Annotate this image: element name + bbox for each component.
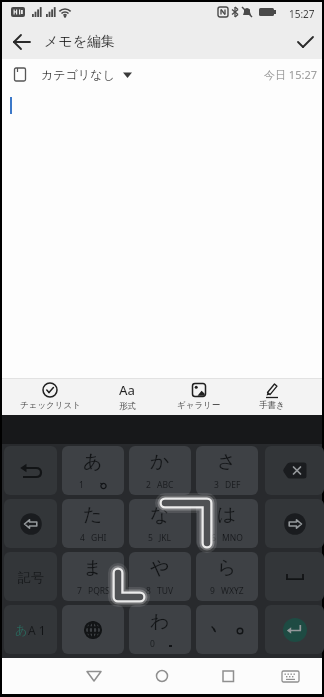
button[interactable]: さ [196, 446, 258, 495]
staticText: メモを編集 [44, 33, 115, 51]
button[interactable] [148, 662, 176, 690]
button[interactable] [276, 662, 304, 690]
staticText: 5 [148, 532, 153, 544]
button[interactable] [80, 662, 108, 690]
button[interactable] [4, 446, 57, 495]
staticText: 6 [211, 532, 216, 544]
button[interactable]: か [129, 446, 191, 495]
button[interactable] [265, 499, 324, 548]
staticText: あ [15, 622, 28, 637]
button[interactable]: は [196, 499, 258, 548]
staticText: A 1 [28, 622, 46, 638]
staticText: わ [150, 610, 170, 634]
button[interactable] [214, 662, 242, 690]
staticText: TUV [157, 585, 174, 597]
button[interactable]: あ [62, 446, 124, 495]
button[interactable]: な [129, 499, 191, 548]
staticText: 4 [80, 532, 85, 544]
staticText: PQRS [88, 585, 110, 597]
button[interactable] [196, 605, 258, 654]
staticText: や [150, 556, 170, 580]
staticText: カテゴリなし [41, 67, 115, 82]
staticText: 0 [150, 638, 155, 650]
button[interactable]: わ [129, 605, 191, 654]
staticText: ま [83, 556, 103, 580]
button[interactable]: ギャラリー [159, 378, 239, 415]
button[interactable]: 記号 [4, 552, 57, 601]
staticText: か [150, 450, 170, 474]
button[interactable]: ら [196, 552, 258, 601]
staticText: あ [83, 450, 103, 474]
staticText: Aa [119, 381, 135, 399]
staticText: 手書き [259, 400, 285, 411]
button[interactable] [265, 446, 324, 495]
button[interactable]: や [129, 552, 191, 601]
staticText: ABC [157, 479, 174, 491]
staticText: WXYZ [221, 585, 244, 597]
staticText: 15:27 [289, 7, 315, 21]
staticText: 形式 [119, 401, 136, 412]
button[interactable] [265, 552, 324, 601]
staticText: 3 [214, 479, 219, 491]
button[interactable]: た [62, 499, 124, 548]
button[interactable] [62, 605, 124, 654]
button[interactable] [292, 29, 318, 55]
button[interactable]: カテゴリなし [14, 59, 133, 90]
staticText: さ [217, 450, 237, 474]
staticText: 今日 15:27 [264, 67, 317, 82]
staticText: チェックリスト [20, 400, 81, 411]
staticText: 記号 [18, 569, 44, 585]
button[interactable]: チェックリスト [10, 378, 90, 415]
button[interactable] [10, 30, 34, 54]
staticText: 8 [146, 585, 151, 597]
button[interactable] [4, 499, 57, 548]
staticText: ギャラリー [177, 400, 221, 411]
staticText: GHI [91, 532, 107, 544]
button[interactable]: 手書き [232, 378, 312, 415]
staticText: ら [217, 556, 237, 580]
button[interactable] [265, 605, 324, 654]
staticText: は [217, 503, 237, 527]
staticText: た [83, 503, 103, 527]
staticText: DEF [225, 479, 241, 491]
staticText: MNO [222, 532, 243, 544]
staticText: な [150, 503, 170, 527]
staticText: 2 [146, 479, 151, 491]
button[interactable]: Aa [87, 378, 167, 415]
button[interactable]: あ [4, 605, 57, 654]
staticText: JKL [159, 532, 172, 544]
staticText: 7 [77, 585, 82, 597]
button[interactable]: ま [62, 552, 124, 601]
staticText: 1 [79, 479, 84, 491]
staticText: 9 [210, 585, 215, 597]
